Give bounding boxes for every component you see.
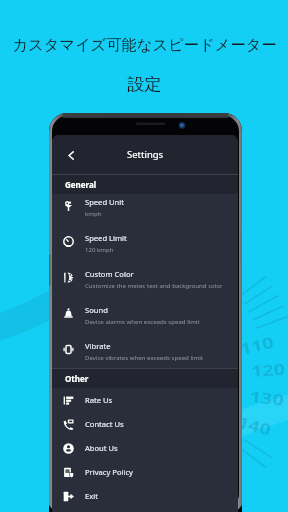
button[interactable]: Custom Color: [52, 266, 238, 302]
staticText: Settings: [127, 148, 164, 161]
staticText: Device vibrates when exceeds speed limit: [85, 353, 204, 361]
staticText: Speed Limit: [85, 233, 127, 243]
staticText: Sound: [85, 305, 108, 315]
staticText: 110: [238, 331, 276, 359]
staticText: Privacy Policy: [85, 467, 133, 477]
button[interactable]: Back: [61, 145, 81, 165]
staticText: Vibrate: [85, 341, 111, 351]
staticText: Device alarms when exceeds speed limit: [85, 317, 200, 325]
button[interactable]: Speed Limit: [52, 230, 238, 266]
staticText: Other: [65, 373, 89, 384]
staticText: Speed Unit: [85, 197, 124, 207]
staticText: 120 kmph: [85, 245, 114, 253]
staticText: カスタマイズ可能なスピードメーター: [12, 35, 277, 54]
staticText: 120: [250, 358, 286, 381]
staticText: Rate Us: [85, 395, 113, 405]
staticText: 130: [249, 386, 285, 410]
staticText: Customize the meter, text and background…: [85, 281, 223, 289]
staticText: Contact Us: [85, 419, 124, 429]
staticText: kmph: [85, 209, 102, 217]
button[interactable]: Sound: [52, 302, 238, 338]
staticText: General: [65, 179, 97, 190]
button[interactable]: Speed Unit: [52, 194, 238, 230]
staticText: About Us: [85, 443, 118, 453]
button[interactable]: About Us: [52, 436, 238, 460]
staticText: Custom Color: [85, 269, 134, 279]
button[interactable]: Exit: [52, 484, 238, 508]
staticText: 140: [235, 411, 274, 440]
button[interactable]: Rate Us: [52, 388, 238, 412]
button[interactable]: Contact Us: [52, 412, 238, 436]
button[interactable]: Vibrate: [52, 338, 238, 368]
staticText: Exit: [85, 491, 98, 501]
button[interactable]: Privacy Policy: [52, 460, 238, 484]
staticText: 設定: [127, 73, 162, 95]
